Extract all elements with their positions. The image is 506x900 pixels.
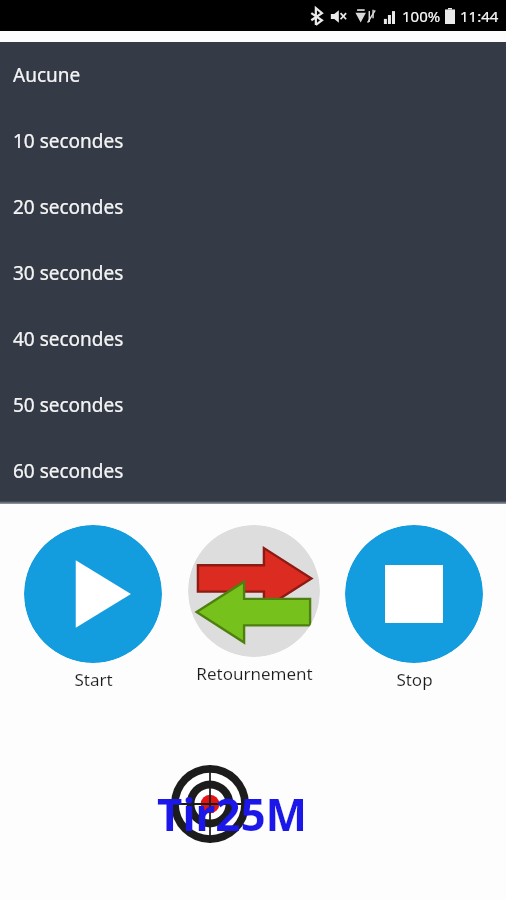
staticText: 11:44 [460,6,499,26]
staticText: 30 secondes [13,260,124,286]
staticText: 50 secondes [13,392,124,418]
button[interactable]: 20 secondes [0,174,506,240]
staticText: Aucune [13,62,81,88]
button[interactable]: Stop [345,525,483,691]
staticText: 60 secondes [13,458,124,484]
button[interactable]: Aucune [0,42,506,108]
staticText: Stop [396,668,433,691]
staticText: 20 secondes [13,194,124,220]
staticText: 40 secondes [13,326,124,352]
staticText: 10 secondes [13,128,124,154]
button[interactable]: 40 secondes [0,306,506,372]
button[interactable]: 10 secondes [0,108,506,174]
button[interactable]: Retournement [188,525,320,685]
staticText: Tir25M [157,784,308,844]
button[interactable]: Start [24,525,162,691]
button[interactable]: 30 secondes [0,240,506,306]
button[interactable]: 60 secondes [0,438,506,504]
button[interactable]: 50 secondes [0,372,506,438]
staticText: 100% [402,6,441,26]
staticText: Start [74,668,113,691]
staticText: Retournement [196,662,313,685]
